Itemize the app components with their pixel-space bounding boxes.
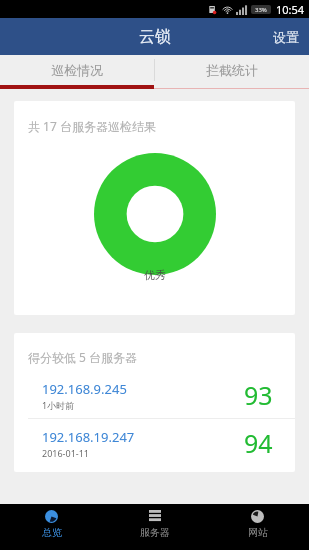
staticText: 拦截统计 <box>206 62 258 78</box>
staticText: 优秀 <box>144 268 166 282</box>
staticText: 巡检情况 <box>51 62 103 78</box>
button[interactable]: 巡检情况 <box>0 55 154 85</box>
button[interactable]: 网站 <box>206 504 309 550</box>
staticText: 总览 <box>42 526 62 539</box>
staticText: 网站 <box>248 526 268 539</box>
staticText: 得分较低 5 台服务器 <box>28 349 138 365</box>
button[interactable]: 192.168.19.247 <box>14 419 295 466</box>
staticText: 10:54 <box>276 2 305 17</box>
button[interactable]: 拦截统计 <box>155 55 309 85</box>
staticText: 2016-01-11 <box>42 447 89 459</box>
button[interactable]: 总览 <box>0 504 103 550</box>
staticText: 93 <box>244 378 273 412</box>
staticText: 云锁 <box>139 27 171 47</box>
staticText: 192.168.19.247 <box>42 428 135 446</box>
staticText: 94 <box>244 426 273 460</box>
button[interactable]: 服务器 <box>103 504 206 550</box>
staticText: 33% <box>255 6 267 14</box>
staticText: 设置 <box>273 29 299 45</box>
staticText: 服务器 <box>140 526 170 539</box>
staticText: 192.168.9.245 <box>42 380 127 398</box>
staticText: 共 17 台服务器巡检结果 <box>28 118 156 134</box>
staticText: 1小时前 <box>42 399 75 411</box>
button[interactable]: 设置 <box>263 21 309 53</box>
button[interactable]: 192.168.9.245 <box>14 371 295 418</box>
